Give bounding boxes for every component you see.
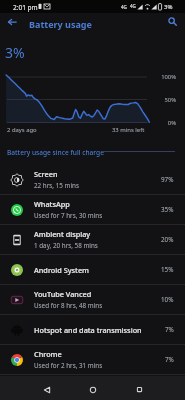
staticText: Battery usage since full charge xyxy=(7,148,104,157)
staticText: Ambient display xyxy=(34,229,91,239)
staticText: 50% xyxy=(146,96,176,104)
button[interactable]: Back xyxy=(36,379,57,400)
button[interactable]: Hotspot and data transmission xyxy=(0,315,185,345)
button[interactable]: Search xyxy=(164,13,181,30)
staticText: 2 days ago xyxy=(7,126,37,134)
staticText: Used for 2 hrs, 31 mins xyxy=(34,361,103,370)
staticText: 0% xyxy=(146,119,176,127)
staticText: 10% xyxy=(161,295,174,304)
staticText: Hotspot and data transmission xyxy=(34,325,142,335)
staticText: 35% xyxy=(161,205,174,214)
staticText: 97% xyxy=(161,175,174,184)
staticText: 4G xyxy=(121,4,127,10)
button[interactable]: Android System xyxy=(0,255,185,285)
button[interactable]: Screen xyxy=(0,165,185,195)
staticText: 22 hrs, 15 mins xyxy=(34,181,79,190)
staticText: 4G xyxy=(130,3,136,9)
staticText: 3% xyxy=(5,43,25,62)
staticText: YouTube Vanced xyxy=(34,289,92,299)
staticText: Used for 8 hrs, 48 mins xyxy=(34,301,103,310)
staticText: Android System xyxy=(34,265,89,275)
button[interactable]: Back xyxy=(3,13,21,31)
button[interactable]: Chrome xyxy=(0,345,185,375)
button[interactable]: WhatsApp xyxy=(0,195,185,225)
button[interactable]: Home xyxy=(82,379,103,400)
staticText: Used for 7 hrs, 30 mins xyxy=(34,211,103,220)
staticText: 33 mins left xyxy=(112,126,145,134)
staticText: 7% xyxy=(165,355,174,364)
staticText: 2:01 pm xyxy=(13,3,38,12)
button[interactable]: Ambient display xyxy=(0,225,185,255)
staticText: Screen xyxy=(34,169,58,179)
staticText: 1 day, 20 hrs, 58 mins xyxy=(34,241,98,250)
staticText: 15% xyxy=(161,265,174,274)
staticText: 7% xyxy=(165,325,174,334)
staticText: 100% xyxy=(146,73,176,81)
staticText: Chrome xyxy=(34,349,62,359)
button[interactable]: YouTube Vanced xyxy=(0,285,185,315)
staticText: WhatsApp xyxy=(34,199,70,209)
staticText: Battery usage xyxy=(29,18,92,30)
button[interactable]: Recent apps xyxy=(129,379,150,400)
staticText: 3% xyxy=(164,3,173,11)
staticText: 20% xyxy=(161,235,174,244)
